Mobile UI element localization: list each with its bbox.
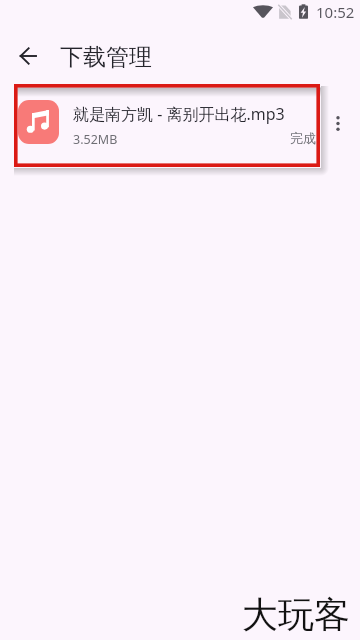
staticText: 就是南方凯 - 离别开出花.mp3: [73, 103, 285, 125]
staticText: 3.52MB: [73, 131, 118, 148]
staticText: 大玩客: [242, 592, 350, 637]
staticText: 10:52: [316, 2, 355, 22]
button[interactable]: More options: [326, 103, 350, 143]
button[interactable]: 就是南方凯 - 离别开出花.mp3: [14, 84, 321, 168]
button[interactable]: Back: [9, 37, 47, 75]
staticText: 完成: [290, 130, 316, 146]
staticText: 下载管理: [60, 43, 152, 72]
